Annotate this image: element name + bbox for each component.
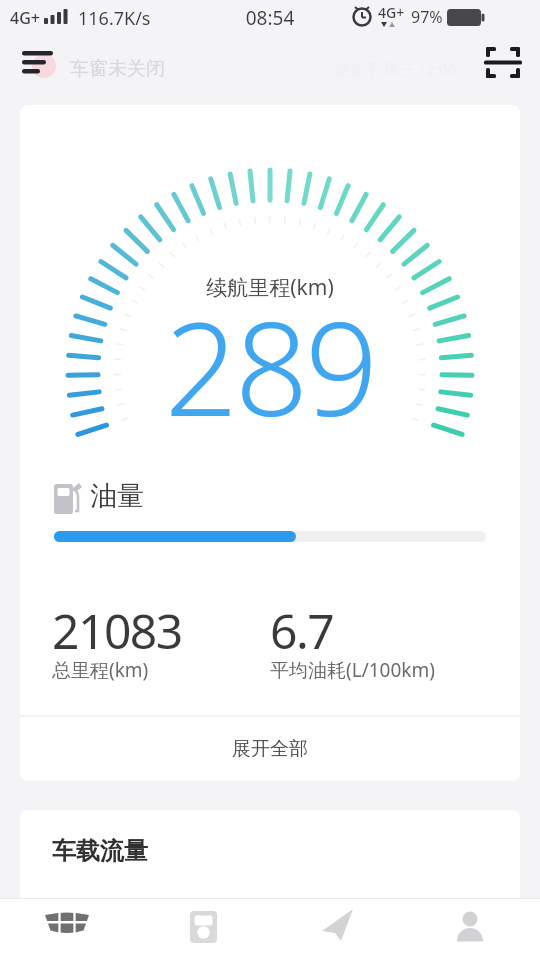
staticText: 08:54 — [0, 5, 540, 31]
button[interactable]: 车载流量 — [20, 810, 520, 960]
staticText: 4G+ — [378, 3, 405, 22]
button[interactable]: 展开全部 — [20, 717, 520, 781]
button[interactable] — [135, 898, 270, 960]
staticText: 展开全部 — [232, 737, 308, 761]
button[interactable] — [14, 43, 70, 97]
button[interactable] — [478, 43, 534, 97]
staticText: 97% — [411, 6, 443, 28]
staticText: 油量 — [90, 479, 144, 513]
button[interactable] — [405, 898, 540, 960]
button[interactable] — [0, 898, 135, 960]
staticText: 续航里程(km) — [20, 273, 520, 302]
staticText: 平均油耗(L/100km) — [270, 657, 435, 683]
staticText: 车载流量 — [52, 836, 148, 866]
button[interactable] — [270, 898, 405, 960]
staticText: 总里程(km) — [52, 657, 149, 683]
staticText: 21083 — [52, 598, 182, 663]
staticText: 289 — [20, 279, 520, 453]
staticText: 116.7K/s — [78, 6, 151, 31]
staticText: 车窗未关闭 — [70, 57, 165, 81]
staticText: 6.7 — [270, 598, 334, 663]
staticText: 4G+ — [10, 7, 40, 29]
